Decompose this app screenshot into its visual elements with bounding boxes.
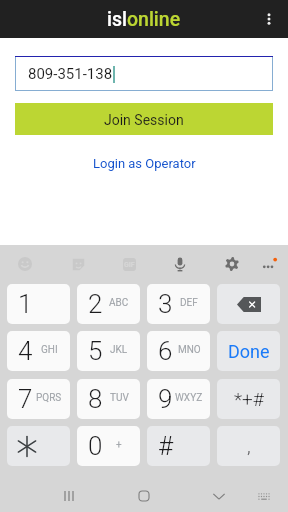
- button[interactable]: Emoji: [9, 248, 41, 280]
- staticText: #: [158, 431, 174, 461]
- staticText: WXYZ: [175, 392, 203, 404]
- staticText: 1: [18, 289, 33, 319]
- staticText: 8: [88, 384, 103, 414]
- button[interactable]: 5: [77, 331, 140, 371]
- staticText: 5: [88, 336, 103, 366]
- button[interactable]: Done: [217, 331, 280, 371]
- staticText: 809-351-138: [28, 65, 113, 83]
- button[interactable]: #: [147, 426, 210, 466]
- button[interactable]: 809-351-138: [15, 56, 273, 91]
- staticText: GHI: [41, 344, 58, 356]
- button[interactable]: Home: [128, 480, 160, 512]
- staticText: MNO: [178, 344, 201, 356]
- button[interactable]: 9: [147, 379, 210, 419]
- button[interactable]: GIF: [113, 248, 145, 280]
- button[interactable]: *+#: [217, 379, 280, 419]
- button[interactable]: 2: [77, 284, 140, 324]
- button[interactable]: 3: [147, 284, 210, 324]
- staticText: 3: [158, 289, 173, 319]
- staticText: ABC: [109, 297, 129, 309]
- staticText: 0: [88, 431, 103, 461]
- staticText: +: [116, 439, 122, 451]
- button[interactable]: Stickers: [62, 248, 94, 280]
- button[interactable]: Login as Operator: [83, 152, 206, 175]
- staticText: islonline: [107, 8, 181, 31]
- button[interactable]: Change keyboard: [248, 480, 280, 512]
- button[interactable]: 1: [7, 284, 70, 324]
- button[interactable]: More options: [253, 248, 285, 280]
- button[interactable]: 8: [77, 379, 140, 419]
- button[interactable]: Backspace: [217, 284, 280, 324]
- button[interactable]: More options: [250, 0, 288, 38]
- staticText: *+#: [234, 388, 264, 410]
- staticText: TUV: [110, 392, 129, 404]
- button[interactable]: 7: [7, 379, 70, 419]
- staticText: 9: [158, 384, 173, 414]
- staticText: ,: [247, 435, 251, 457]
- staticText: Done: [228, 341, 270, 362]
- staticText: GIF: [124, 261, 135, 269]
- button[interactable]: 6: [147, 331, 210, 371]
- staticText: 7: [18, 384, 33, 414]
- button[interactable]: Asterisk: [7, 426, 70, 466]
- button[interactable]: 4: [7, 331, 70, 371]
- button[interactable]: Voice input: [164, 248, 196, 280]
- button[interactable]: Join Session: [15, 103, 273, 135]
- staticText: 6: [158, 336, 173, 366]
- button[interactable]: Recent apps: [53, 480, 85, 512]
- button[interactable]: Hide keyboard: [203, 480, 235, 512]
- button[interactable]: 0: [77, 426, 140, 466]
- staticText: 4: [18, 336, 33, 366]
- staticText: Login as Operator: [93, 156, 196, 171]
- staticText: Join Session: [104, 112, 184, 128]
- staticText: PQRS: [36, 392, 62, 404]
- button[interactable]: ,: [217, 426, 280, 466]
- staticText: 2: [88, 289, 103, 319]
- staticText: DEF: [180, 297, 198, 309]
- button[interactable]: Settings: [216, 248, 248, 280]
- staticText: JKL: [110, 344, 128, 356]
